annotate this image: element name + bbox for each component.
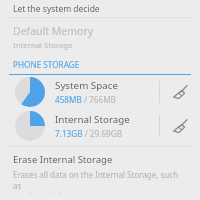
staticText: Internal Storage [55, 113, 130, 126]
staticText: 458MB / 766MB [55, 94, 116, 105]
staticText: Default Memory [13, 24, 94, 38]
button[interactable]: System Space [0, 75, 200, 109]
staticText: Internal Storage [13, 40, 73, 51]
staticText: Let the system decide [13, 3, 100, 15]
staticText: music and photos [13, 191, 80, 194]
staticText: Erases all data on the Internal Storage,… [13, 169, 188, 191]
button[interactable]: Clean System Space [160, 75, 200, 109]
staticText: System Space [55, 79, 118, 92]
button[interactable]: Default Memory [0, 23, 200, 51]
button[interactable]: Clean Internal Storage [160, 109, 200, 143]
button[interactable]: Erase Internal Storage [0, 147, 200, 200]
button[interactable]: Internal Storage [0, 109, 200, 143]
staticText: PHONE STORAGE [13, 59, 80, 70]
staticText: 7.13GB / 29.69GB [55, 128, 123, 139]
button[interactable]: Let the system decide [0, 0, 200, 17]
staticText: Erase Internal Storage [13, 153, 113, 166]
